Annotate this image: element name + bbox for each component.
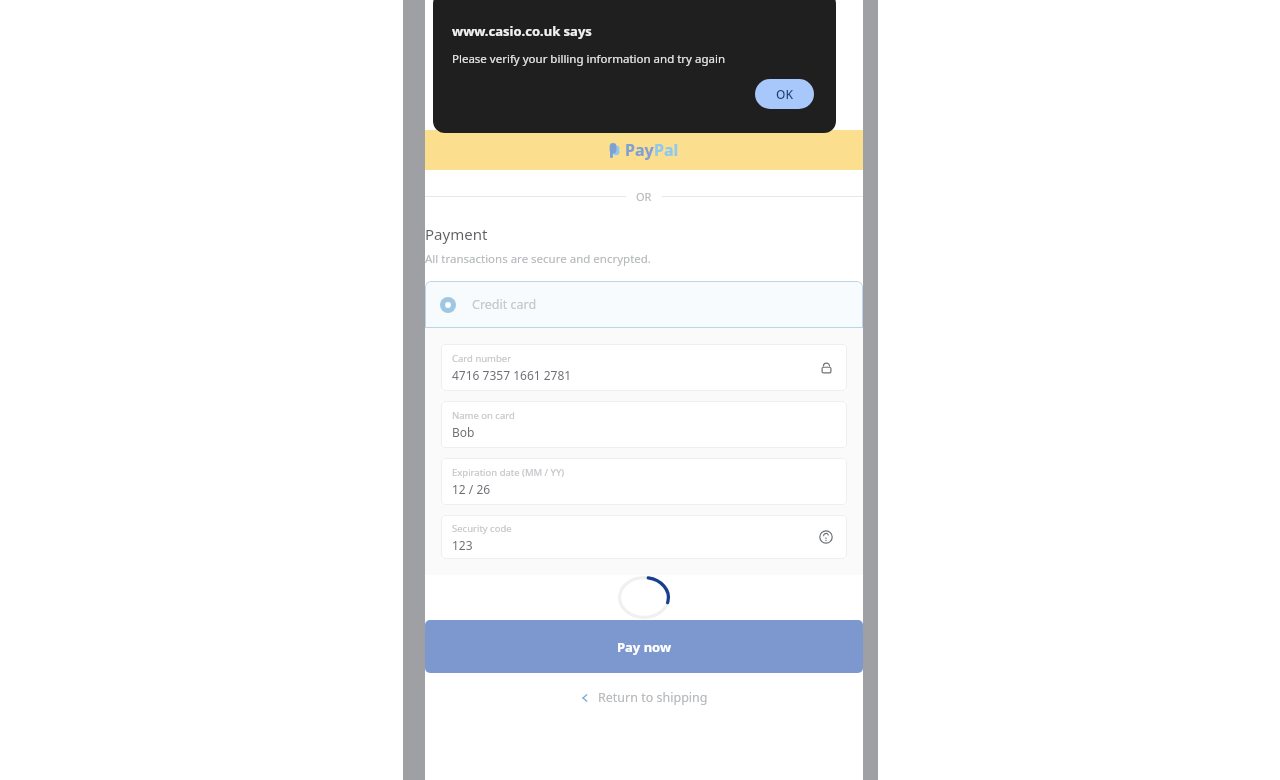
button[interactable]: Return to shipping (425, 689, 863, 706)
staticText: All transactions are secure and encrypte… (425, 251, 651, 267)
other: Secure (820, 361, 833, 374)
button[interactable]: Security code (441, 515, 847, 559)
button[interactable]: Name on card (441, 401, 847, 448)
staticText: OR (636, 189, 652, 204)
button[interactable]: Credit card (425, 281, 863, 328)
button[interactable]: Pay now (425, 620, 863, 673)
staticText: Pay now (617, 638, 672, 656)
staticText: 12 / 26 (452, 481, 491, 497)
staticText: www.casio.co.uk says (452, 22, 592, 40)
button[interactable]: Pay with PayPal (425, 130, 863, 170)
staticText: Payment (425, 224, 488, 244)
button[interactable]: Card number (441, 344, 847, 391)
staticText: 4716 7357 1661 2781 (452, 367, 572, 383)
staticText: Return to shipping (598, 689, 708, 706)
button[interactable]: Expiration date (MM / YY) (441, 458, 847, 505)
staticText: OK (776, 86, 793, 102)
staticText: 123 (452, 537, 473, 553)
staticText: Security code (452, 522, 512, 535)
staticText: Credit card (472, 296, 537, 313)
staticText: Pal (654, 139, 679, 161)
staticText: Please verify your billing information a… (452, 51, 726, 67)
staticText: Expiration date (MM / YY) (452, 466, 565, 479)
staticText: Name on card (452, 409, 515, 422)
staticText: Pay (625, 139, 654, 161)
button[interactable]: OK (755, 79, 814, 109)
other: Security code help (819, 530, 833, 544)
staticText: Card number (452, 352, 512, 365)
staticText: Bob (452, 424, 475, 440)
